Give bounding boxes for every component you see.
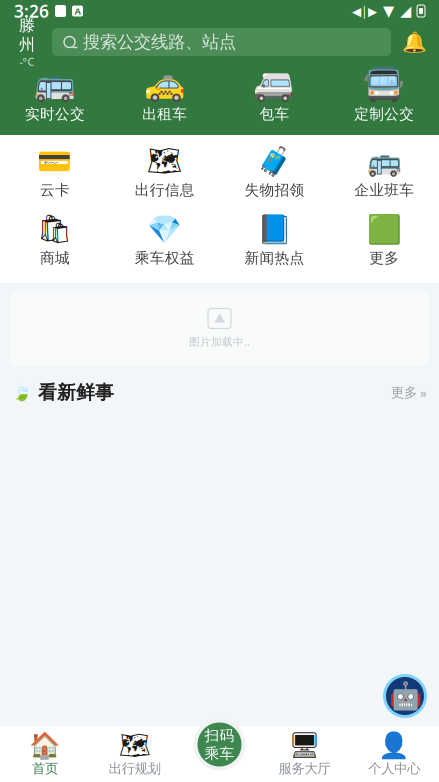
staticText: -°C — [19, 55, 34, 69]
button[interactable]: 🚍 — [329, 70, 439, 123]
staticText: 💎 — [147, 213, 182, 245]
staticText: 更多 — [369, 249, 399, 267]
staticText: 🗺 — [147, 145, 183, 177]
button[interactable]: 更多 — [391, 384, 427, 401]
staticText: 图片加载中.. — [189, 334, 250, 349]
button[interactable]: 🚌 — [329, 149, 439, 199]
staticText: 3:26 — [14, 0, 49, 22]
button[interactable]: 🚐 — [219, 70, 329, 123]
button[interactable]: 🖥 — [259, 734, 349, 777]
staticText: 🟩 — [367, 213, 402, 245]
staticText: 🛍 — [37, 213, 73, 245]
staticText: 搜索公交线路、站点 — [83, 31, 236, 53]
staticText: 包车 — [259, 105, 289, 123]
button[interactable]: 📘 — [219, 217, 329, 267]
staticText: 定制公交 — [354, 105, 414, 123]
staticText: 🍃 — [12, 383, 32, 402]
staticText: 滕州 — [19, 15, 35, 55]
staticText: 🖥 — [288, 731, 320, 760]
staticText: 实时公交 — [25, 105, 85, 123]
staticText: 👤 — [378, 731, 410, 760]
staticText: 服务大厅 — [278, 760, 330, 777]
staticText: 出租车 — [142, 105, 187, 123]
button[interactable]: 🚕 — [110, 70, 220, 123]
button[interactable]: 🛍 — [0, 217, 110, 267]
staticText: 首页 — [32, 760, 58, 777]
button[interactable]: 🧳 — [219, 149, 329, 199]
staticText: 🚌 — [367, 145, 402, 177]
staticText: 🧳 — [257, 145, 292, 177]
staticText: 扫码 — [204, 726, 234, 744]
staticText: 企业班车 — [354, 181, 414, 199]
button[interactable]: 搜索公交线路、站点 — [52, 28, 391, 56]
staticText: ▼ — [383, 3, 394, 19]
staticText: ◀|▶ — [352, 3, 377, 19]
button[interactable]: 扫码 — [193, 718, 245, 770]
staticText: 商城 — [40, 249, 70, 267]
button[interactable]: 🟩 — [329, 217, 439, 267]
button[interactable]: 通知 — [401, 29, 427, 55]
button[interactable]: 🏠 — [0, 734, 90, 777]
staticText: 🗺 — [119, 731, 151, 760]
button[interactable]: 滕州 — [12, 15, 42, 69]
staticText: 🏠 — [29, 731, 61, 760]
staticText: 📘 — [257, 213, 292, 245]
staticText: 看新鲜事 — [38, 381, 114, 404]
staticText: 出行信息 — [135, 181, 195, 199]
staticText: 🚕 — [144, 65, 186, 103]
staticText: A — [74, 5, 80, 17]
button[interactable]: 🚌 — [0, 70, 110, 123]
staticText: 🚌 — [34, 65, 76, 103]
staticText: 云卡 — [40, 181, 70, 199]
staticText: 更多 — [391, 384, 417, 401]
staticText: ◢ — [400, 3, 411, 19]
button[interactable]: 💳 — [0, 149, 110, 199]
staticText: 个人中心 — [368, 760, 420, 777]
staticText: 新闻热点 — [244, 249, 304, 267]
staticText: 乘车 — [204, 744, 234, 762]
staticText: » — [420, 384, 427, 401]
button[interactable]: 🗺 — [90, 734, 180, 777]
staticText: 乘车权益 — [135, 249, 195, 267]
button[interactable]: 🗺 — [110, 149, 220, 199]
button[interactable]: 💎 — [110, 217, 220, 267]
staticText: 🚍 — [363, 65, 405, 103]
staticText: 🚐 — [253, 65, 295, 103]
staticText: 🔔 — [401, 31, 426, 53]
staticText: 💳 — [37, 145, 72, 177]
staticText: 🤖 — [388, 681, 421, 711]
button[interactable]: 👤 — [349, 734, 439, 777]
button[interactable]: 智能客服 — [383, 674, 427, 718]
staticText: 失物招领 — [244, 181, 304, 199]
staticText: ⛰ — [214, 312, 225, 325]
staticText: 出行规划 — [109, 760, 161, 777]
